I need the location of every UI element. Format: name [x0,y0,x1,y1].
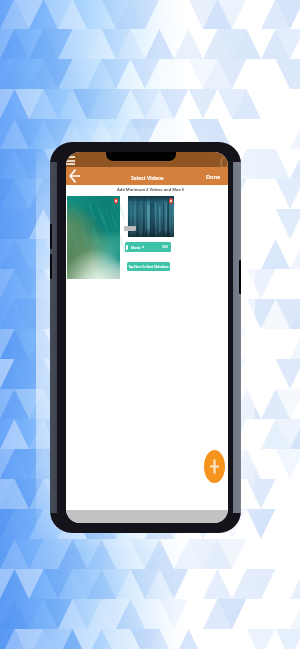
button[interactable]: Done [206,172,221,180]
staticText: Select Videos [131,174,164,181]
button[interactable]: Profile [221,157,228,168]
button[interactable]: Remove [114,198,118,204]
button[interactable]: Back [66,167,84,185]
button[interactable]: Music [125,242,171,252]
button[interactable]: Menu [66,154,79,167]
staticText: Tap Here To Start Slideshow [128,265,169,269]
button[interactable]: Remove [169,198,173,204]
staticText: 0:00 [162,245,169,249]
staticText: Done [206,173,221,181]
button[interactable]: Tap Here To Start Slideshow [127,262,170,271]
button[interactable]: Remove [67,196,120,279]
button[interactable]: Remove [128,196,174,237]
staticText: Add Minimum 2 Videos and Max 5 [117,187,185,192]
staticText: Music [131,245,141,250]
button[interactable]: Add [204,450,225,483]
